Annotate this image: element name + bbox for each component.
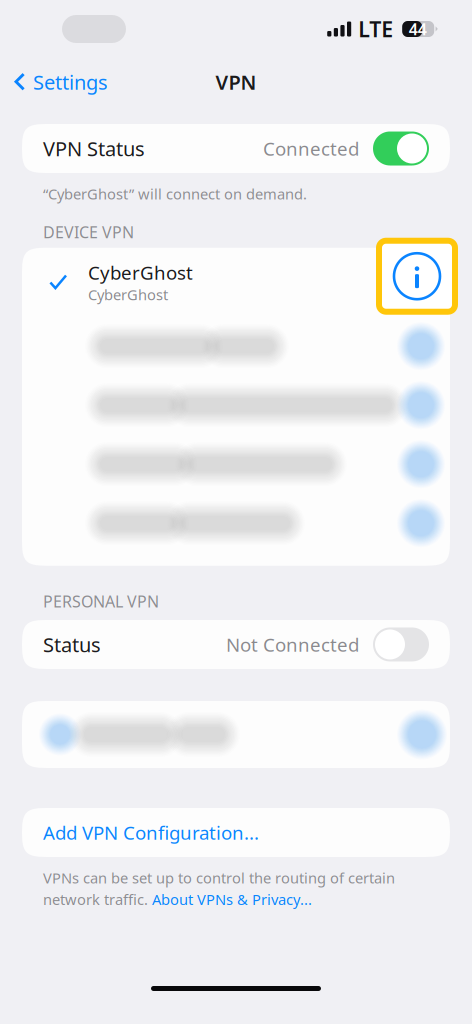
staticText: network traffic. xyxy=(43,889,152,909)
staticText: PERSONAL VPN xyxy=(43,591,159,612)
staticText: “CyberGhost” will connect on demand. xyxy=(43,184,307,203)
button[interactable]: Personal VPN status toggle xyxy=(373,627,429,661)
staticText: CyberGhost xyxy=(88,285,168,304)
staticText: 44 xyxy=(409,18,427,40)
staticText: VPN xyxy=(215,69,256,95)
staticText: Status xyxy=(43,631,101,658)
staticText: VPN Status xyxy=(43,135,145,162)
staticText: LTE xyxy=(358,15,393,43)
staticText: CyberGhost xyxy=(88,260,193,285)
button[interactable]: VPN Status toggle xyxy=(373,131,429,165)
staticText: VPNs can be set up to control the routin… xyxy=(43,868,395,887)
staticText: Not Connected xyxy=(226,632,359,657)
staticText: Connected xyxy=(263,136,359,161)
button[interactable]: Settings xyxy=(0,61,118,103)
staticText: Add VPN Configuration... xyxy=(43,820,259,845)
staticText: Settings xyxy=(33,69,108,95)
staticText: DEVICE VPN xyxy=(43,221,134,243)
button[interactable]: Add VPN Configuration... xyxy=(0,808,472,857)
button[interactable]: CyberGhost details xyxy=(376,238,458,315)
staticText: About VPNs & Privacy... xyxy=(152,889,312,909)
button[interactable]: About VPNs & Privacy... xyxy=(152,889,312,909)
